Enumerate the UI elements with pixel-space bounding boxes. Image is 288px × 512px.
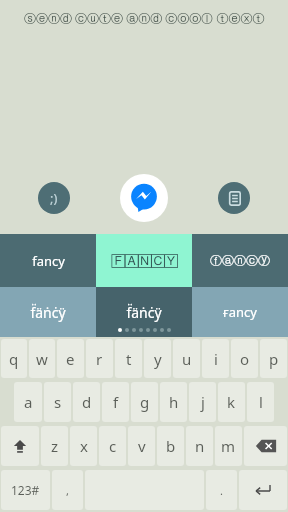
staticText: ғancy — [223, 303, 257, 321]
button[interactable]: j — [189, 382, 216, 422]
button[interactable]: z — [41, 426, 68, 466]
button[interactable]: ⓕⓐⓝⓒⓨ — [192, 234, 288, 287]
button[interactable]: d — [73, 382, 100, 422]
staticText: t — [126, 349, 132, 369]
staticText: q — [9, 349, 19, 369]
staticText: f — [113, 392, 119, 412]
staticText: 123# — [11, 482, 40, 498]
staticText: r — [96, 349, 103, 369]
staticText: o — [240, 349, 250, 369]
button[interactable]: t — [115, 339, 142, 378]
button[interactable]: s — [44, 382, 71, 422]
staticText: ;) — [50, 189, 58, 207]
staticText: fancy — [32, 252, 65, 270]
button[interactable]: 🄵🄰🄽🄲🅈 — [96, 234, 192, 287]
button[interactable]: f̈äṅċÿ — [96, 287, 192, 337]
button[interactable]: w — [29, 339, 55, 378]
button[interactable]: k — [218, 382, 245, 422]
button[interactable]: b — [157, 426, 184, 466]
staticText: y — [154, 349, 162, 369]
staticText: k — [227, 392, 236, 412]
button[interactable]: Templates — [218, 182, 250, 214]
button[interactable]: f̈äṅċÿ — [0, 287, 96, 337]
staticText: f̈äṅċÿ — [30, 303, 66, 322]
button[interactable]: f — [102, 382, 129, 422]
staticText: 🄵🄰🄽🄲🅈 — [111, 255, 178, 267]
button[interactable]: 123# — [1, 470, 50, 510]
staticText: p — [269, 349, 279, 369]
button[interactable]: e — [57, 339, 84, 378]
staticText: ⓕⓐⓝⓒⓨ — [210, 253, 270, 268]
button[interactable]: r — [86, 339, 113, 378]
button[interactable]: Shift — [1, 426, 39, 466]
staticText: l — [259, 392, 263, 412]
staticText: d — [82, 392, 92, 412]
staticText: e — [66, 349, 75, 369]
staticText: w — [36, 349, 48, 369]
staticText: v — [138, 436, 146, 456]
button[interactable]: o — [231, 339, 258, 378]
staticText: n — [195, 436, 205, 456]
button[interactable]: Send to Messenger — [120, 174, 168, 222]
button[interactable]: Comma — [52, 470, 83, 510]
staticText: z — [51, 436, 59, 456]
staticText: i — [214, 349, 218, 369]
button[interactable]: h — [160, 382, 187, 422]
button[interactable]: u — [173, 339, 200, 378]
staticText: ⓢⓔⓝⓓ ⓒⓤⓣⓔ ⓐⓝⓓ ⓒⓞⓞⓛ ⓣⓔⓧⓣ — [24, 10, 265, 26]
button[interactable]: y — [144, 339, 171, 378]
button[interactable]: Emoticons — [38, 182, 70, 214]
button[interactable]: l — [247, 382, 274, 422]
button[interactable]: v — [128, 426, 155, 466]
staticText: m — [221, 436, 236, 456]
staticText: b — [166, 436, 176, 456]
button[interactable]: g — [131, 382, 158, 422]
button[interactable]: m — [215, 426, 242, 466]
staticText: g — [140, 392, 150, 412]
staticText: c — [109, 436, 117, 456]
button[interactable]: Period — [206, 470, 237, 510]
button[interactable]: q — [1, 339, 27, 378]
button[interactable]: ғancy — [192, 287, 288, 337]
button[interactable]: Enter — [239, 470, 287, 510]
button[interactable]: p — [260, 339, 287, 378]
staticText: u — [182, 349, 192, 369]
staticText: h — [169, 392, 179, 412]
button[interactable]: x — [70, 426, 97, 466]
staticText: . — [220, 483, 223, 498]
staticText: a — [24, 392, 33, 412]
button[interactable]: fancy — [0, 234, 96, 287]
staticText: s — [54, 392, 62, 412]
button[interactable]: c — [99, 426, 126, 466]
button[interactable]: n — [186, 426, 213, 466]
staticText: j — [201, 392, 205, 412]
staticText: f̈äṅċÿ — [126, 303, 162, 322]
staticText: x — [80, 436, 88, 456]
button[interactable]: a — [14, 382, 42, 422]
staticText: , — [66, 483, 69, 498]
button[interactable]: Backspace — [244, 426, 287, 466]
button[interactable]: i — [202, 339, 229, 378]
